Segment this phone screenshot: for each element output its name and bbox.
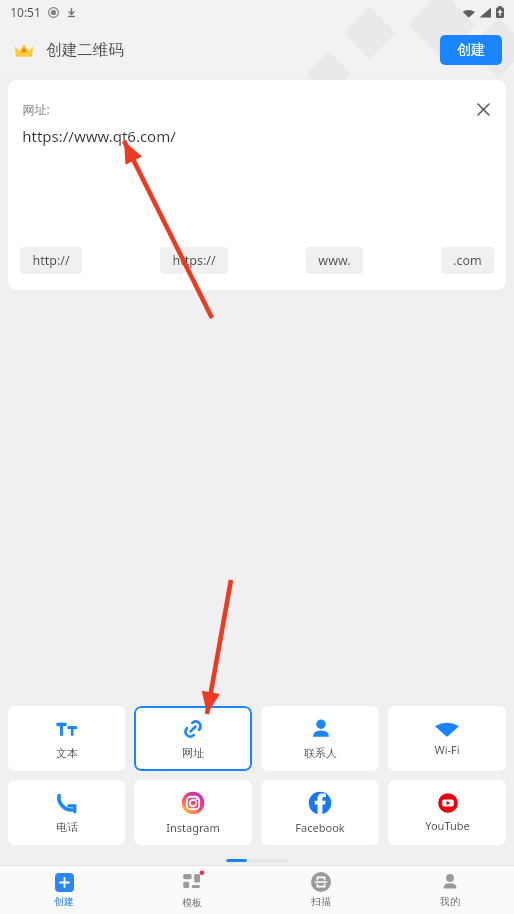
button[interactable]: 电话 bbox=[8, 780, 125, 845]
staticText: https://www.qt6.com/ bbox=[22, 126, 176, 146]
button[interactable]: http:// bbox=[20, 247, 82, 274]
button[interactable]: 我的 bbox=[385, 868, 514, 912]
staticText: Instagram bbox=[166, 820, 220, 835]
button[interactable]: Wi-Fi bbox=[388, 706, 506, 771]
button[interactable]: 创建 bbox=[0, 869, 128, 912]
staticText: https:// bbox=[172, 252, 216, 269]
button[interactable]: 文本 bbox=[8, 706, 125, 771]
staticText: YouTube bbox=[425, 818, 470, 833]
staticText: 网址: bbox=[22, 101, 50, 117]
staticText: 联系人 bbox=[304, 746, 337, 760]
button[interactable]: 扫描 bbox=[256, 868, 385, 912]
button[interactable]: 联系人 bbox=[261, 706, 379, 771]
staticText: .com bbox=[453, 252, 482, 269]
staticText: 电话 bbox=[56, 820, 78, 834]
button[interactable]: 创建 bbox=[440, 35, 502, 65]
staticText: 创建二维码 bbox=[46, 40, 124, 60]
button[interactable]: https:// bbox=[160, 247, 228, 274]
staticText: 文本 bbox=[56, 746, 78, 760]
button[interactable]: 模板 bbox=[128, 868, 256, 913]
staticText: 我的 bbox=[440, 895, 460, 908]
button[interactable]: Facebook bbox=[261, 780, 379, 845]
staticText: Facebook bbox=[295, 820, 345, 835]
staticText: 模板 bbox=[182, 896, 202, 909]
staticText: 扫描 bbox=[311, 895, 331, 908]
button[interactable]: Instagram bbox=[134, 780, 252, 845]
staticText: www. bbox=[318, 252, 351, 269]
button[interactable]: www. bbox=[306, 247, 363, 274]
staticText: 创建 bbox=[457, 41, 485, 59]
button[interactable]: 关闭 bbox=[468, 94, 498, 124]
button[interactable]: 网址 bbox=[134, 706, 252, 771]
staticText: 网址 bbox=[182, 746, 204, 760]
button[interactable]: YouTube bbox=[388, 780, 506, 845]
staticText: http:// bbox=[32, 252, 70, 269]
staticText: 10:51 bbox=[10, 4, 41, 20]
staticText: 创建 bbox=[54, 895, 74, 908]
button[interactable]: .com bbox=[441, 247, 494, 274]
staticText: Wi-Fi bbox=[434, 742, 460, 757]
